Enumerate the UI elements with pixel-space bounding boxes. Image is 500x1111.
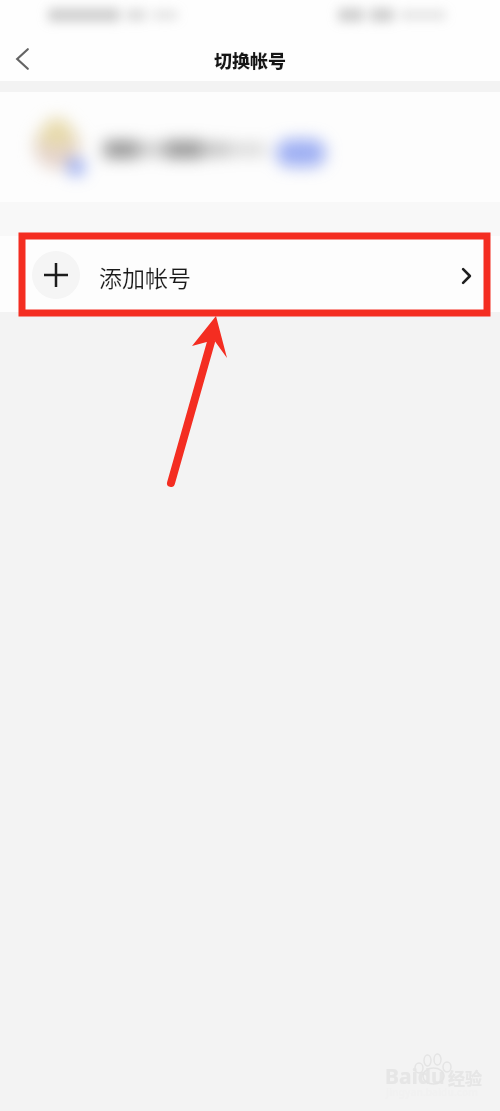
staticText: 经验 (448, 1065, 482, 1090)
staticText: 切换帐号 (214, 47, 286, 73)
staticText: 添加帐号 (99, 260, 191, 293)
button[interactable] (0, 92, 500, 202)
button[interactable]: Back (0, 37, 44, 81)
button[interactable]: 添加帐号 (0, 236, 500, 312)
staticText: Baidu (385, 1062, 445, 1091)
